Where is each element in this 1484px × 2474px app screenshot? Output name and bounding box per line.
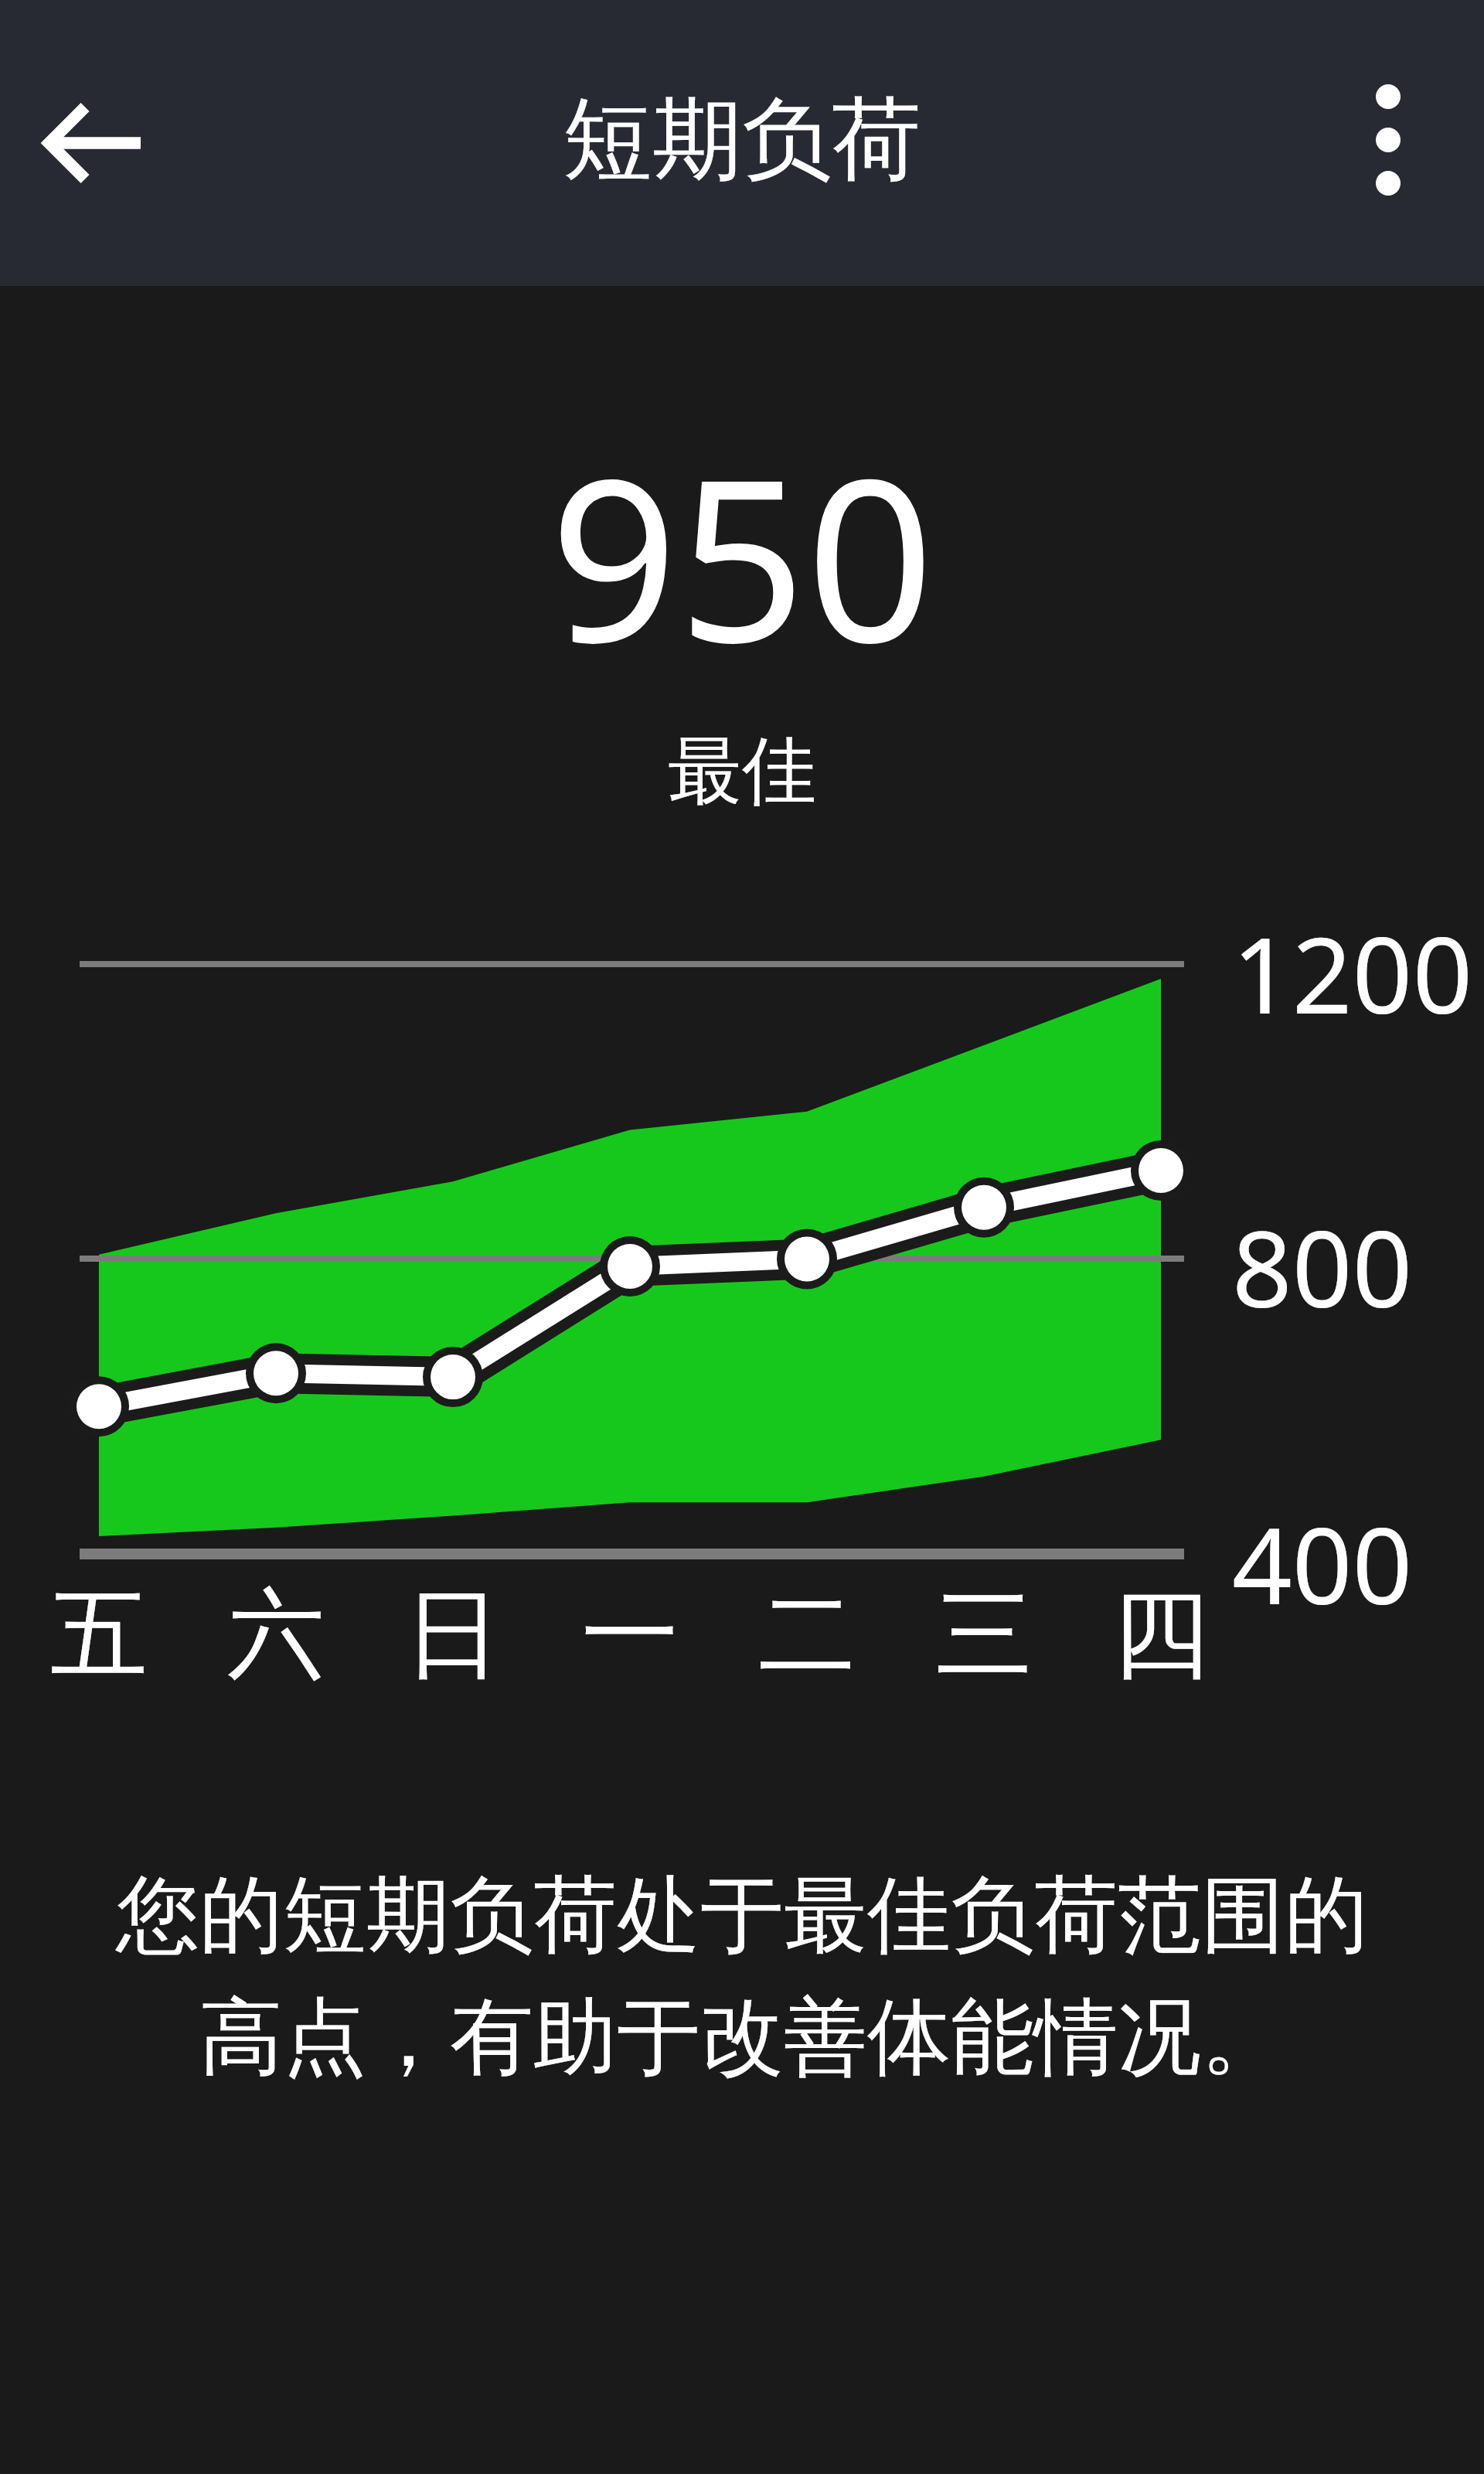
staticText: 您的短期负荷处于最佳负荷范围的高点，有助于改善体能情况。 bbox=[93, 1863, 1391, 2091]
staticText: 三 bbox=[935, 1574, 1033, 1697]
staticText: 800 bbox=[1232, 1195, 1413, 1338]
staticText: 四 bbox=[1112, 1574, 1210, 1697]
staticText: 六 bbox=[227, 1574, 325, 1697]
staticText: 1200 bbox=[1232, 901, 1473, 1044]
staticText: 400 bbox=[1232, 1492, 1413, 1635]
staticText: 二 bbox=[758, 1574, 856, 1697]
staticText: 最佳 bbox=[0, 725, 1484, 819]
button[interactable]: More options bbox=[1314, 66, 1462, 214]
staticText: 短期负荷 bbox=[563, 83, 921, 196]
button[interactable]: Back bbox=[15, 66, 170, 220]
staticText: 一 bbox=[581, 1574, 679, 1697]
staticText: 五 bbox=[50, 1574, 148, 1697]
staticText: 950 bbox=[0, 402, 1484, 707]
staticText: 日 bbox=[404, 1574, 502, 1697]
